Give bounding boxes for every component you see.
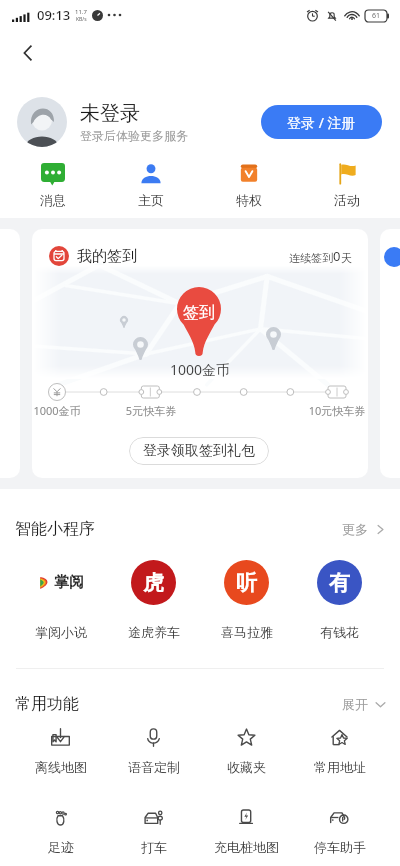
staticText: 停车助手 bbox=[314, 839, 366, 855]
staticText: KB/s bbox=[76, 16, 87, 23]
staticText: 离线地图 bbox=[35, 759, 87, 775]
button[interactable]: 收藏夹 bbox=[200, 727, 293, 775]
staticText: 61 bbox=[372, 11, 381, 21]
staticText: 消息 bbox=[40, 192, 66, 208]
button[interactable]: 登录 / 注册 bbox=[261, 105, 382, 139]
button[interactable]: 打车 bbox=[107, 807, 200, 855]
staticText: 1000金币 bbox=[170, 360, 231, 379]
button[interactable]: 离线地图 bbox=[14, 727, 107, 775]
button[interactable]: 展开 bbox=[334, 696, 386, 712]
button[interactable]: 停车助手 bbox=[293, 807, 386, 855]
button[interactable]: 活动 bbox=[302, 163, 392, 208]
staticText: 5元快车券 bbox=[116, 403, 186, 418]
staticText: 喜马拉雅 bbox=[221, 624, 273, 640]
staticText: 主页 bbox=[138, 192, 164, 208]
staticText: 我的签到 bbox=[77, 247, 137, 266]
staticText: 常用功能 bbox=[15, 694, 79, 714]
button[interactable]: 特权 bbox=[204, 163, 294, 208]
staticText: 智能小程序 bbox=[15, 519, 95, 539]
staticText: 充电桩地图 bbox=[214, 839, 279, 855]
button[interactable]: 充电桩地图 bbox=[200, 807, 293, 855]
button[interactable]: Avatar bbox=[17, 97, 67, 147]
staticText: 收藏夹 bbox=[227, 759, 266, 775]
button[interactable]: 掌阅 bbox=[14, 560, 107, 640]
staticText: 途虎养车 bbox=[128, 624, 180, 640]
staticText: 11.7 bbox=[75, 8, 87, 16]
staticText: 掌阅 bbox=[54, 573, 84, 592]
button[interactable]: 更多 bbox=[334, 521, 386, 537]
staticText: 活动 bbox=[334, 192, 360, 208]
staticText: 登录后体验更多服务 bbox=[80, 128, 188, 143]
staticText: 掌阅小说 bbox=[35, 624, 87, 640]
staticText: 登录领取签到礼包 bbox=[143, 442, 255, 460]
button[interactable]: 主页 bbox=[106, 163, 196, 208]
button[interactable]: 有 bbox=[293, 560, 386, 640]
button[interactable]: Back bbox=[5, 30, 51, 76]
staticText: 登录 / 注册 bbox=[287, 113, 356, 132]
staticText: 1000金币 bbox=[32, 403, 92, 418]
staticText: 天 bbox=[341, 251, 352, 265]
staticText: 有钱花 bbox=[320, 624, 359, 640]
button[interactable]: 语音定制 bbox=[107, 727, 200, 775]
staticText: 有 bbox=[329, 570, 350, 596]
staticText: 10元快车券 bbox=[302, 403, 368, 418]
staticText: 足迹 bbox=[48, 839, 74, 855]
button[interactable]: 常用地址 bbox=[293, 727, 386, 775]
staticText: 打车 bbox=[141, 839, 167, 855]
button[interactable]: 消息 bbox=[8, 163, 98, 208]
button[interactable]: 签到 bbox=[32, 229, 368, 478]
button[interactable]: 登录领取签到礼包 bbox=[129, 437, 269, 465]
button[interactable]: 足迹 bbox=[14, 807, 107, 855]
staticText: 听 bbox=[236, 570, 257, 596]
staticText: 语音定制 bbox=[128, 759, 180, 775]
staticText: 展开 bbox=[342, 696, 368, 712]
staticText: 特权 bbox=[236, 192, 262, 208]
staticText: 签到 bbox=[183, 303, 215, 323]
staticText: 0 bbox=[333, 247, 341, 265]
button[interactable]: 虎 bbox=[107, 560, 200, 640]
button[interactable]: 听 bbox=[200, 560, 293, 640]
staticText: 更多 bbox=[342, 521, 368, 537]
staticText: 未登录 bbox=[80, 101, 140, 126]
staticText: 连续签到 bbox=[289, 251, 333, 265]
staticText: 虎 bbox=[143, 570, 164, 596]
staticText: 09:13 bbox=[37, 6, 71, 24]
staticText: 常用地址 bbox=[314, 759, 366, 775]
